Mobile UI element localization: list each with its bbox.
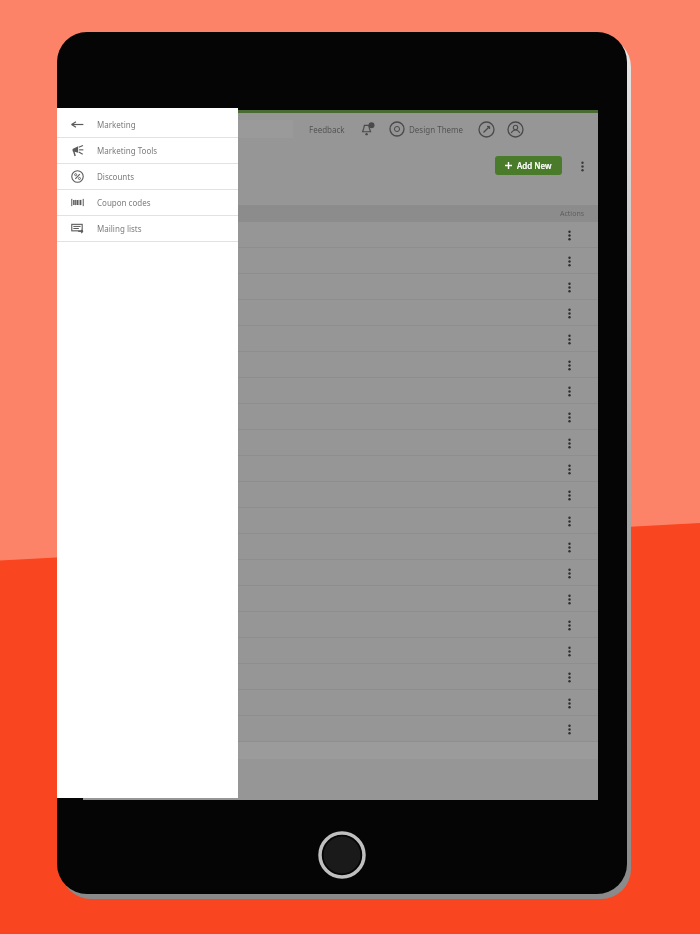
- staticText: Discounts: [97, 171, 135, 182]
- button[interactable]: Row actions: [83, 430, 598, 456]
- button[interactable]: Theme icon: [389, 121, 405, 137]
- button[interactable]: Row actions: [562, 254, 576, 268]
- staticText: Add New: [517, 160, 552, 171]
- button[interactable]: Row actions: [562, 644, 576, 658]
- button[interactable]: Row actions: [83, 508, 598, 534]
- button[interactable]: Row actions: [83, 248, 598, 274]
- button[interactable]: Row actions: [83, 638, 598, 664]
- button[interactable]: Marketing Tools: [57, 138, 238, 163]
- button[interactable]: Row actions: [562, 540, 576, 554]
- button[interactable]: Row actions: [83, 612, 598, 638]
- button[interactable]: Row actions: [562, 566, 576, 580]
- button[interactable]: Row actions: [83, 534, 598, 560]
- button[interactable]: Row actions: [83, 456, 598, 482]
- button[interactable]: Row actions: [562, 722, 576, 736]
- button[interactable]: Row actions: [83, 560, 598, 586]
- button[interactable]: Row actions: [83, 300, 598, 326]
- button[interactable]: [93, 120, 293, 138]
- button[interactable]: Row actions: [562, 592, 576, 606]
- button[interactable]: Row actions: [83, 378, 598, 404]
- button[interactable]: Row actions: [562, 384, 576, 398]
- button[interactable]: Row actions: [562, 228, 576, 242]
- button[interactable]: Open store: [478, 121, 495, 138]
- staticText: Coupon codes: [97, 197, 151, 208]
- button[interactable]: Marketing: [57, 112, 238, 137]
- button[interactable]: Row actions: [83, 586, 598, 612]
- button[interactable]: Row actions: [562, 436, 576, 450]
- button[interactable]: Row actions: [562, 670, 576, 684]
- staticText: Marketing: [97, 119, 136, 130]
- button[interactable]: Design Theme: [409, 124, 464, 135]
- button[interactable]: Row actions: [83, 664, 598, 690]
- button[interactable]: Row actions: [83, 352, 598, 378]
- button[interactable]: Row actions: [83, 482, 598, 508]
- button[interactable]: Coupon codes: [57, 190, 238, 215]
- button[interactable]: Row actions: [83, 222, 598, 248]
- staticText: Mailing lists: [97, 223, 142, 234]
- button[interactable]: More options: [574, 158, 590, 174]
- button[interactable]: Row actions: [562, 332, 576, 346]
- button[interactable]: Row actions: [562, 358, 576, 372]
- button[interactable]: Row actions: [562, 514, 576, 528]
- button[interactable]: Notifications: [359, 120, 377, 138]
- button[interactable]: Feedback: [309, 124, 345, 135]
- button[interactable]: Mailing lists: [57, 216, 238, 241]
- button[interactable]: Row actions: [562, 306, 576, 320]
- button[interactable]: Row actions: [83, 690, 598, 716]
- button[interactable]: Account: [507, 121, 524, 138]
- button[interactable]: Row actions: [562, 280, 576, 294]
- button[interactable]: Row actions: [83, 404, 598, 430]
- button[interactable]: Row actions: [562, 410, 576, 424]
- staticText: Marketing Tools: [97, 145, 158, 156]
- button[interactable]: Row actions: [562, 462, 576, 476]
- button[interactable]: Row actions: [562, 696, 576, 710]
- button[interactable]: Add New: [495, 156, 562, 175]
- staticText: Actions: [560, 209, 585, 219]
- button[interactable]: Row actions: [83, 274, 598, 300]
- button[interactable]: Discounts: [57, 164, 238, 189]
- button[interactable]: Row actions: [562, 618, 576, 632]
- button[interactable]: Row actions: [83, 716, 598, 742]
- button[interactable]: Row actions: [562, 488, 576, 502]
- button[interactable]: Row actions: [83, 326, 598, 352]
- button[interactable]: Home: [320, 833, 364, 877]
